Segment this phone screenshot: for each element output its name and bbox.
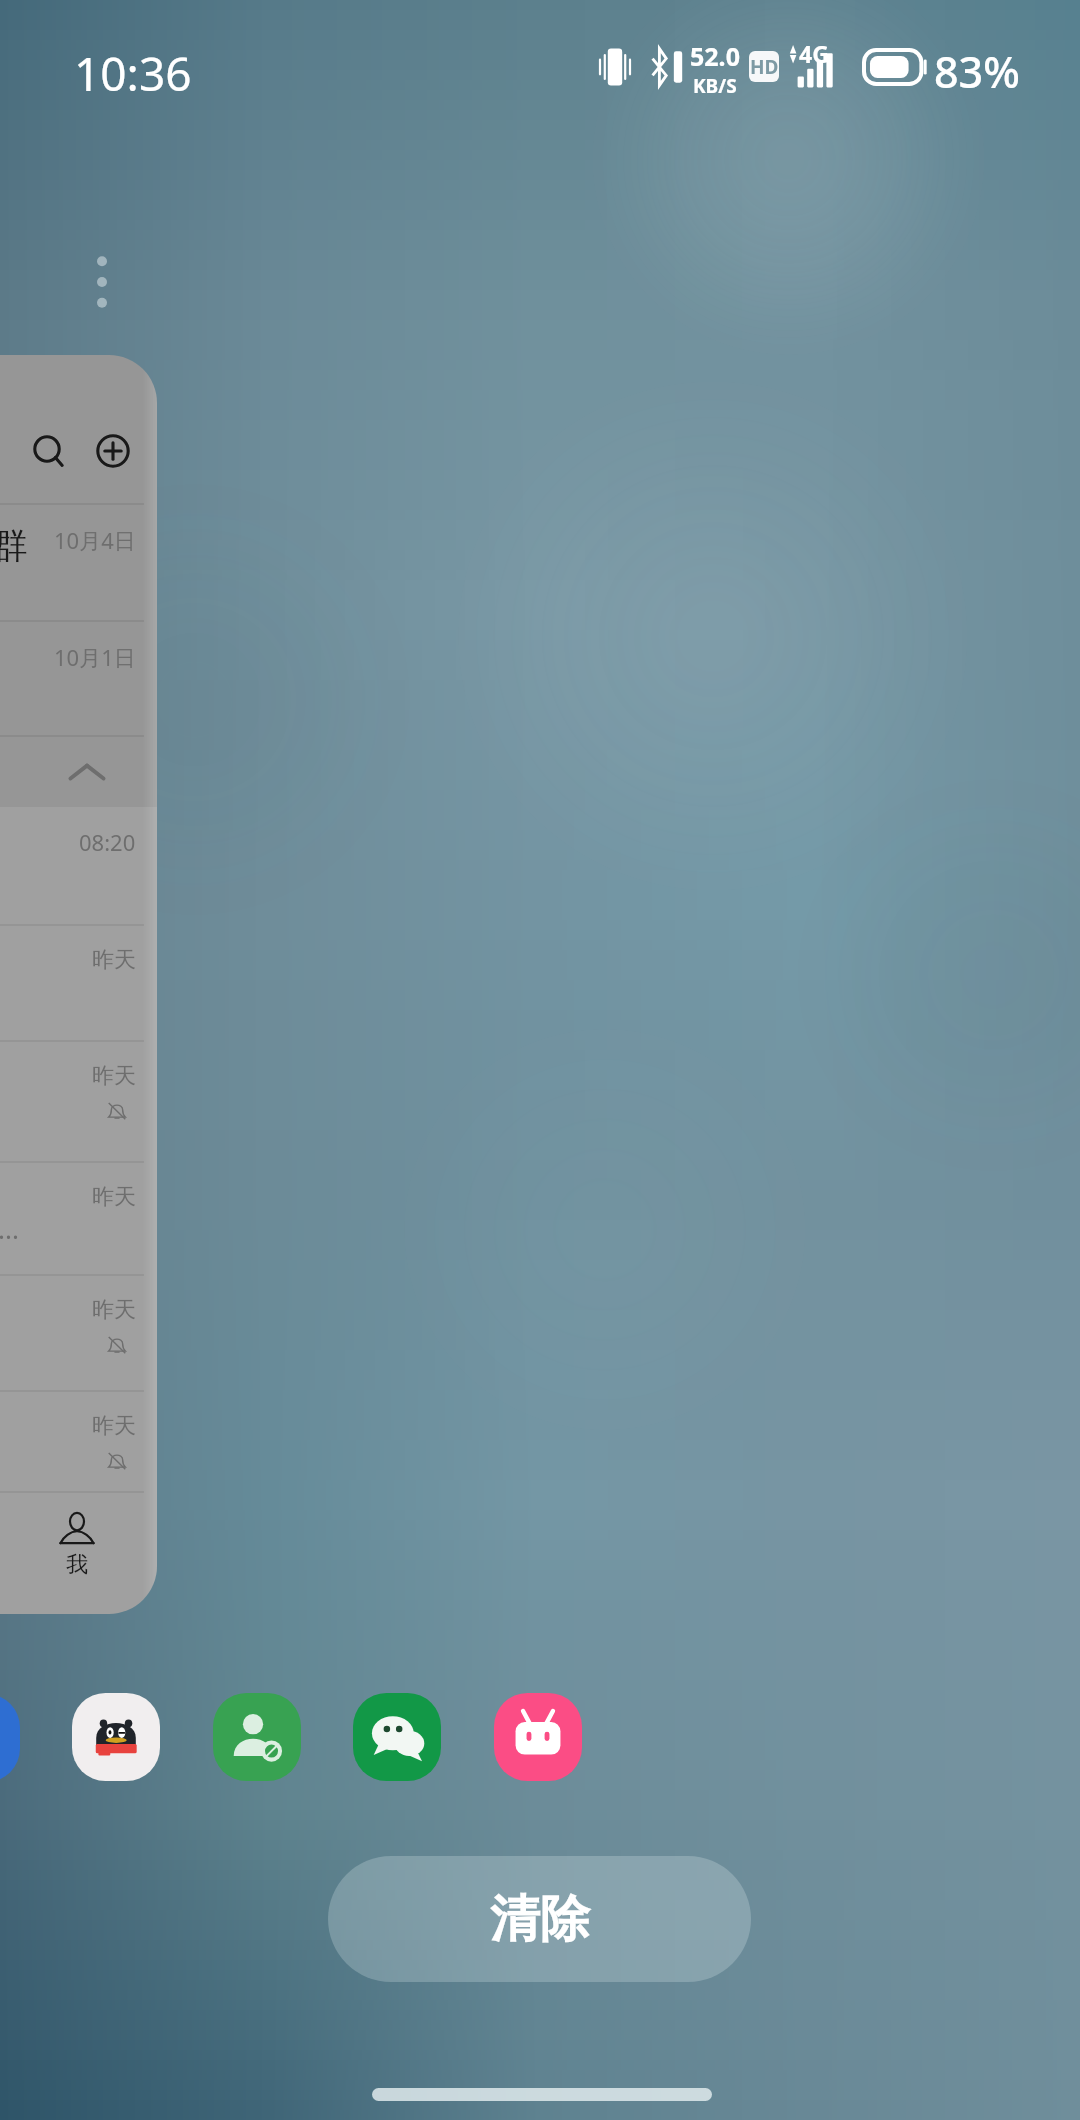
- staticText: 08:20: [79, 827, 136, 857]
- staticText: 昨天: [92, 1412, 136, 1440]
- staticText: 4G: [799, 38, 829, 69]
- staticText: 10月4日: [54, 525, 136, 555]
- button[interactable]: 昨天: [0, 1276, 157, 1390]
- button[interactable]: 昨天: [0, 1163, 157, 1274]
- button[interactable]: WeChat recent task: [0, 355, 157, 1614]
- button[interactable]: New chat: [87, 425, 139, 477]
- button[interactable]: QQ: [72, 1693, 160, 1781]
- staticText: 83%: [934, 42, 1020, 101]
- staticText: 10:36: [74, 42, 192, 105]
- button[interactable]: 08:20: [0, 807, 157, 924]
- button[interactable]: Search: [21, 423, 73, 475]
- button[interactable]: Bilibili: [494, 1693, 582, 1781]
- staticText: 清除: [490, 1888, 590, 1951]
- staticText: ...: [0, 1211, 19, 1246]
- button[interactable]: 昨天: [0, 1042, 157, 1161]
- button[interactable]: 我: [57, 1509, 97, 1579]
- button[interactable]: 清除: [328, 1856, 751, 1982]
- button[interactable]: 昨天: [0, 926, 157, 1040]
- button[interactable]: 群: [0, 505, 157, 620]
- staticText: KB/S: [693, 73, 737, 99]
- button[interactable]: App: [0, 1694, 20, 1782]
- staticText: 昨天: [92, 946, 136, 974]
- staticText: 昨天: [92, 1062, 136, 1090]
- button[interactable]: 10月1日: [0, 622, 157, 735]
- staticText: HD: [750, 54, 779, 80]
- staticText: 昨天: [92, 1183, 136, 1211]
- button[interactable]: More options: [92, 256, 112, 308]
- staticText: 52.0: [690, 39, 740, 73]
- staticText: 群: [0, 523, 28, 568]
- staticText: 10月1日: [54, 642, 136, 672]
- button[interactable]: WeChat: [353, 1693, 441, 1781]
- staticText: 我: [66, 1551, 88, 1579]
- staticText: 昨天: [92, 1296, 136, 1324]
- button[interactable]: Collapse: [0, 737, 157, 807]
- button[interactable]: 昨天: [0, 1392, 157, 1491]
- button[interactable]: Contacts: [213, 1693, 301, 1781]
